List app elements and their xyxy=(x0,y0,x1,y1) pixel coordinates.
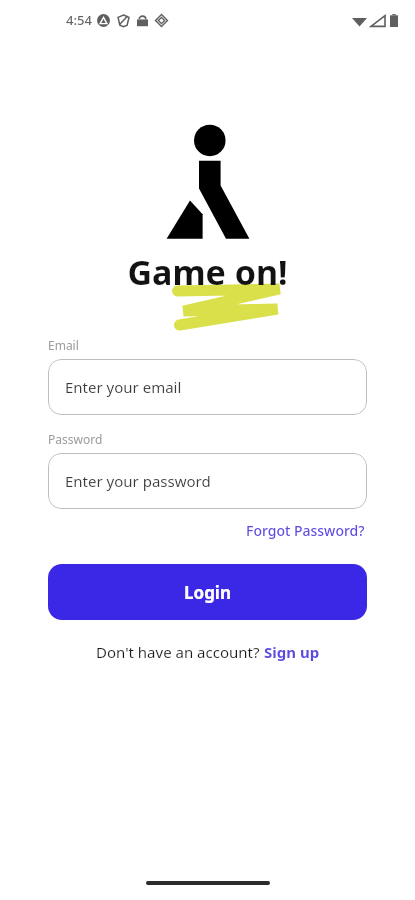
staticText: Forgot Password? xyxy=(246,521,365,540)
button[interactable]: Forgot Password? xyxy=(244,519,367,542)
staticText: Enter your password xyxy=(65,471,211,491)
button[interactable]: Enter your email xyxy=(48,359,367,415)
staticText: Sign up xyxy=(264,642,320,662)
button[interactable]: Login xyxy=(48,564,367,620)
staticText: Password xyxy=(48,431,103,447)
button[interactable]: Enter your password xyxy=(48,453,367,509)
button[interactable]: Sign up xyxy=(264,642,320,662)
staticText: Login xyxy=(184,581,232,604)
staticText: Email xyxy=(48,337,79,353)
staticText: Enter your email xyxy=(65,377,182,397)
staticText: Game on! xyxy=(127,249,288,295)
staticText: Don't have an account? xyxy=(96,642,264,662)
staticText: 4:54 xyxy=(66,11,92,29)
